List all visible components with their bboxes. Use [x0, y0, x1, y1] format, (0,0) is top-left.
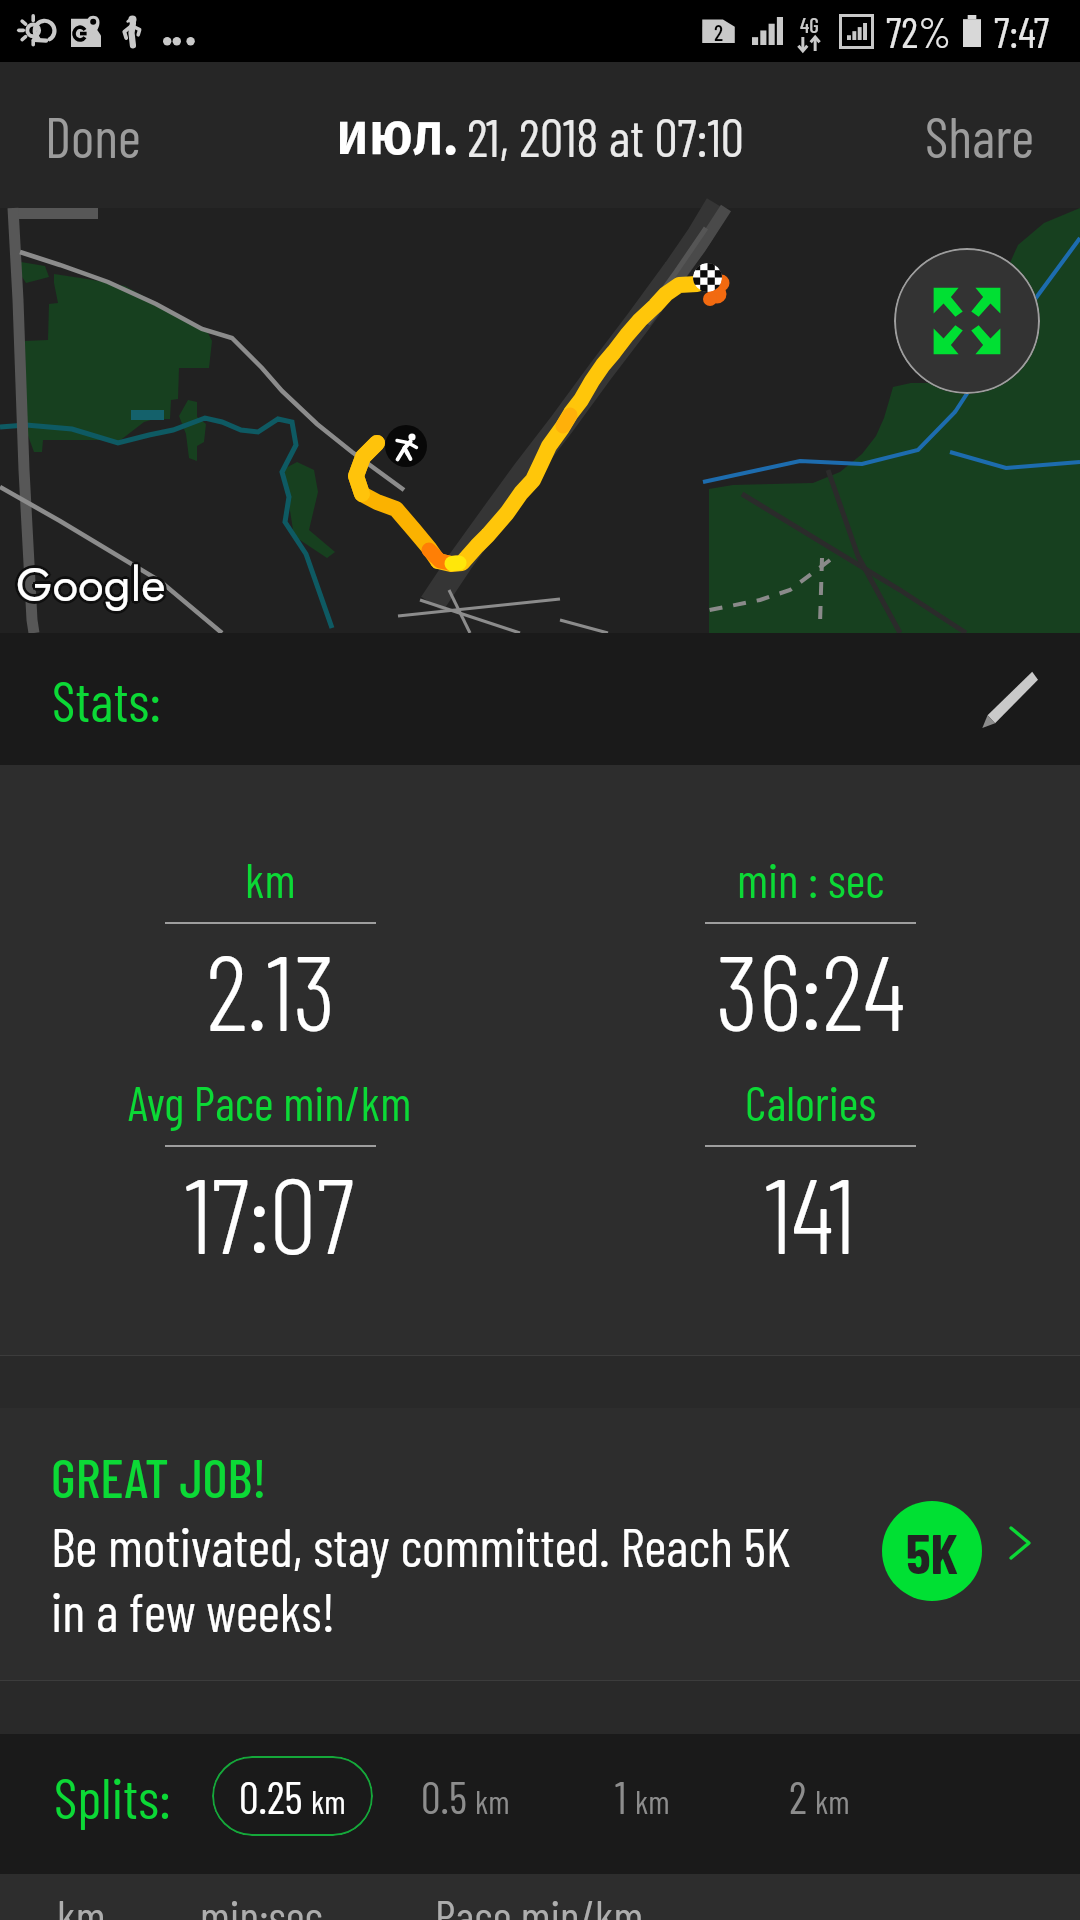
staticText: 141 [765, 1148, 856, 1275]
staticText: Google [16, 551, 166, 619]
button[interactable]: Edit stats [964, 654, 1054, 744]
staticText: Google [14, 551, 164, 619]
button[interactable]: GREAT JOB! [0, 1408, 1080, 1680]
staticText: 21, 2018 at 07:10 [467, 105, 744, 167]
staticText: Google [18, 553, 168, 621]
staticText: Google [18, 550, 168, 618]
staticText: Google [15, 550, 165, 618]
staticText: Google [17, 549, 167, 617]
staticText: in a few weeks! [51, 1578, 335, 1643]
staticText: km [475, 1781, 510, 1821]
button[interactable]: 1 [609, 1756, 676, 1836]
staticText: 4G [800, 12, 819, 37]
staticText: Google [18, 551, 168, 619]
staticText: min:sec [200, 1888, 324, 1920]
staticText: Stats: [52, 666, 162, 733]
staticText: 17:07 [185, 1148, 355, 1275]
staticText: km [245, 850, 296, 908]
staticText: Google [15, 552, 165, 620]
button[interactable]: 2 [783, 1756, 856, 1836]
staticText: Google [18, 549, 168, 617]
staticText: Google [17, 550, 167, 618]
staticText: Google [16, 548, 166, 616]
staticText: km [635, 1781, 670, 1821]
staticText: Google [15, 551, 165, 619]
staticText: Google [16, 552, 166, 620]
staticText: июл. [336, 97, 458, 170]
staticText: 2.13 [206, 925, 336, 1052]
staticText: 1 [615, 1770, 627, 1823]
staticText: Be motivated, stay committed. Reach 5K [51, 1513, 791, 1578]
button[interactable]: Share [885, 62, 1080, 208]
staticText: Google [18, 552, 168, 620]
staticText: Done [45, 102, 141, 169]
staticText: Google [19, 551, 169, 619]
staticText: 2 [714, 19, 724, 45]
staticText: 0.25 [239, 1770, 303, 1823]
staticText: min : sec [737, 850, 885, 908]
staticText: Google [17, 552, 167, 620]
staticText: Google [17, 551, 167, 619]
button[interactable]: Done [0, 62, 181, 208]
staticText: Google [14, 550, 164, 618]
staticText: Google [13, 551, 163, 619]
staticText: Google [16, 549, 166, 617]
staticText: Google [16, 550, 166, 618]
staticText: Google [14, 552, 164, 620]
staticText: Google [14, 553, 164, 621]
staticText: Pace min/km [435, 1888, 644, 1920]
staticText: Google [16, 554, 166, 622]
staticText: Avg Pace min/km [128, 1073, 412, 1131]
staticText: 7:47 [994, 6, 1050, 56]
staticText: km [815, 1781, 850, 1821]
staticText: 5K [906, 1518, 959, 1585]
button[interactable]: 0.5 [415, 1756, 516, 1836]
staticText: 72% [886, 6, 952, 56]
staticText: km [57, 1888, 106, 1920]
staticText: 36:24 [716, 925, 906, 1052]
staticText: Google [16, 553, 166, 621]
staticText: Google [15, 553, 165, 621]
staticText: Google [17, 553, 167, 621]
staticText: 0.5 [421, 1770, 467, 1823]
button[interactable]: Expand map to full screen [894, 248, 1040, 394]
staticText: km [311, 1781, 346, 1821]
staticText: GREAT JOB! [51, 1444, 267, 1509]
staticText: Splits: [54, 1763, 171, 1830]
button[interactable]: 0.25 [212, 1756, 373, 1836]
staticText: Google [15, 549, 165, 617]
staticText: Google [14, 549, 164, 617]
staticText: Share [925, 102, 1035, 169]
staticText: Calories [745, 1073, 877, 1131]
staticText: 2 [789, 1770, 807, 1823]
